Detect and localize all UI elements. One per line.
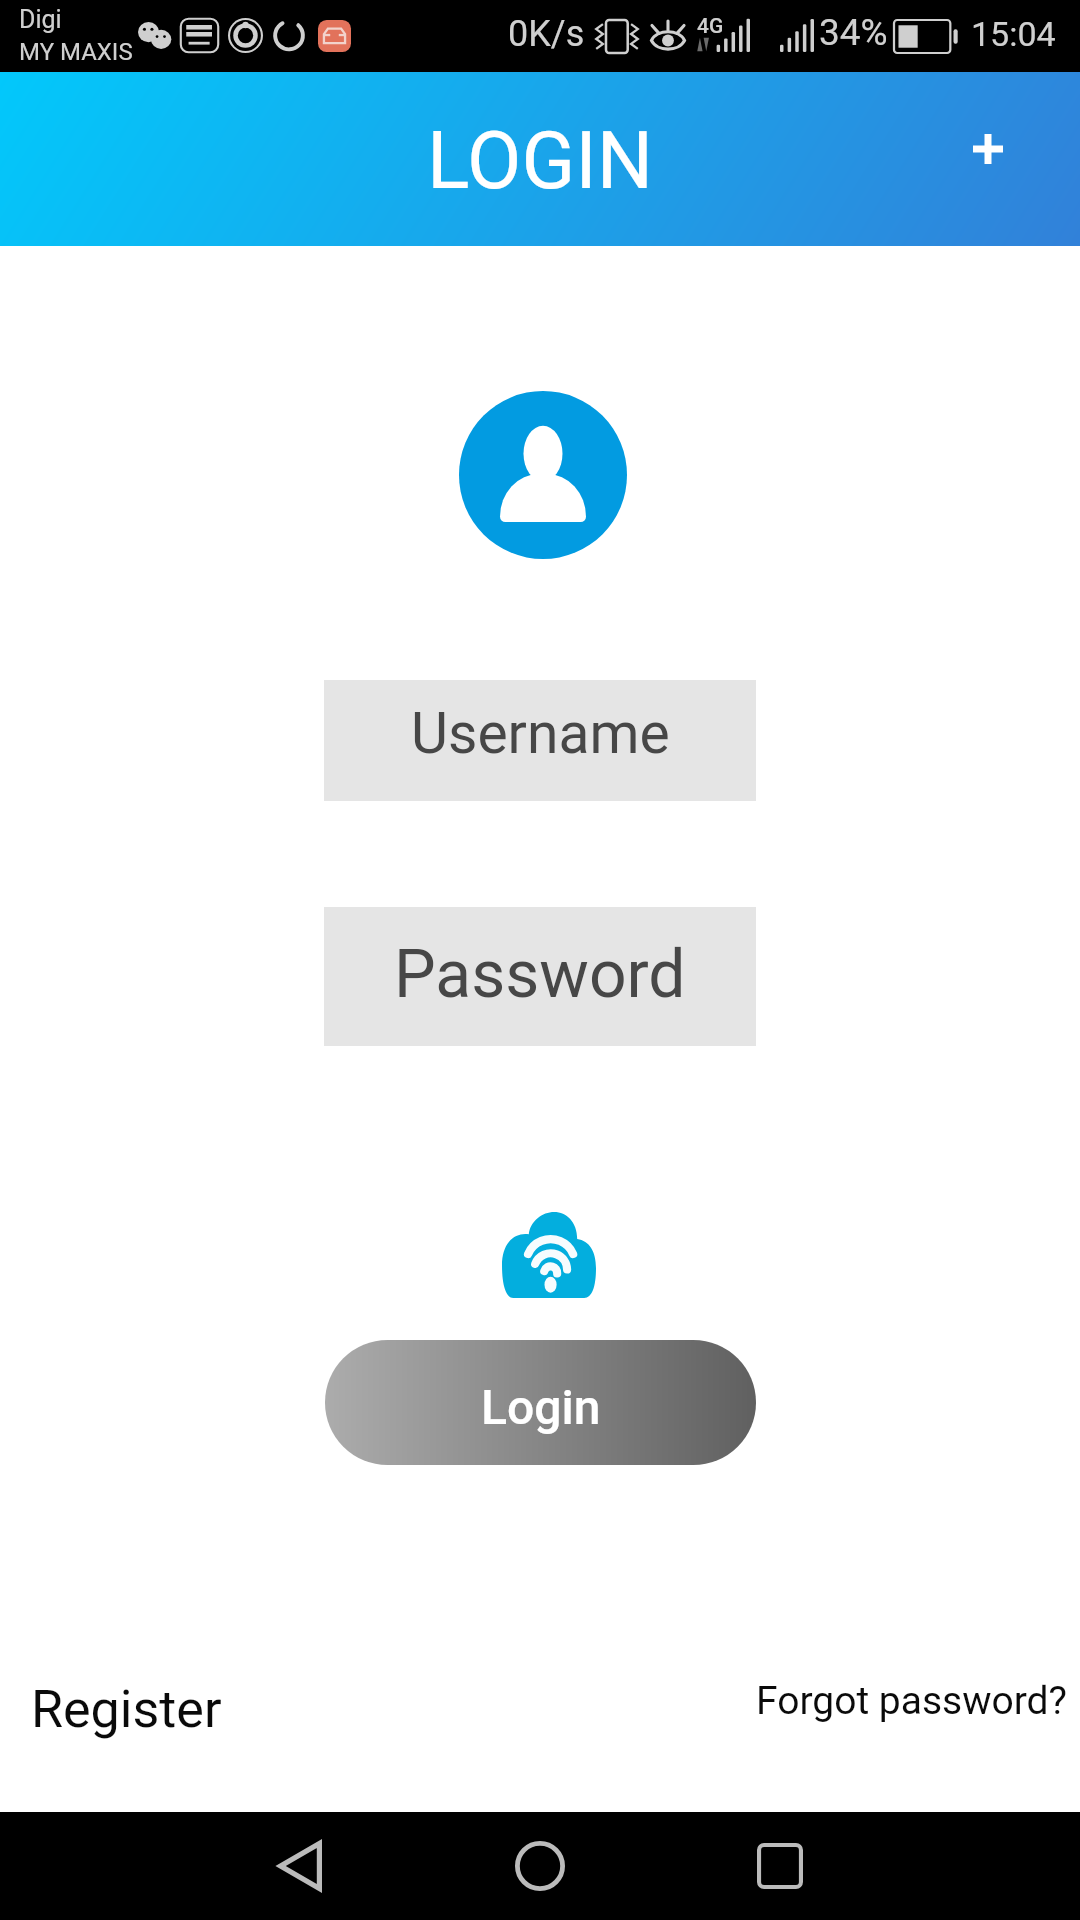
staticText: Login: [481, 1379, 601, 1435]
staticText: Digi: [19, 5, 62, 34]
button[interactable]: Login: [325, 1340, 756, 1465]
button[interactable]: Password: [324, 907, 756, 1046]
button[interactable]: Register: [31, 1679, 222, 1740]
staticText: Password: [394, 936, 686, 1013]
button[interactable]: Username: [324, 680, 756, 801]
staticText: 4G: [697, 14, 724, 39]
button[interactable]: Recents: [660, 1812, 900, 1920]
staticText: 34%: [819, 11, 888, 54]
button[interactable]: Home: [420, 1812, 660, 1920]
staticText: 15:04: [971, 14, 1056, 54]
staticText: MY MAXIS: [19, 38, 133, 66]
button[interactable]: Forgot password?: [756, 1678, 1068, 1724]
staticText: Register: [31, 1679, 222, 1740]
button[interactable]: Back: [180, 1812, 420, 1920]
staticText: Forgot password?: [756, 1678, 1068, 1724]
staticText: LOGIN: [427, 115, 654, 208]
staticText: Username: [411, 700, 670, 767]
button[interactable]: Add: [930, 91, 1046, 207]
staticText: 0K/s: [508, 13, 585, 55]
